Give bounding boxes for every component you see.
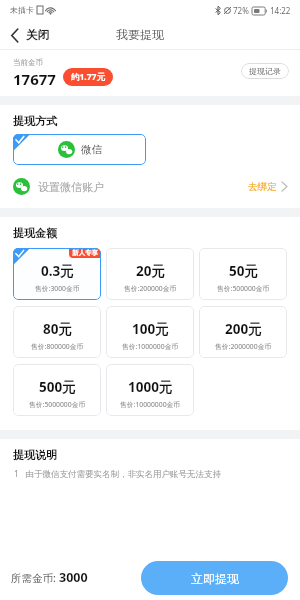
staticText: 提现记录	[249, 66, 281, 76]
staticText: 14:22	[270, 5, 291, 16]
staticText: 我要提现	[116, 27, 164, 42]
staticText: 当前金币	[13, 58, 43, 67]
staticText: 售价:10000000金币	[120, 400, 181, 409]
staticText: 80元	[43, 320, 72, 338]
staticText: 售价:1000000金币	[122, 342, 179, 351]
staticText: 关闭	[26, 28, 49, 42]
staticText: 微信	[81, 143, 102, 156]
staticText: 售价:5000000金币	[29, 400, 86, 409]
button[interactable]: 500元	[13, 364, 101, 416]
button[interactable]: 提现记录	[241, 63, 289, 79]
staticText: 新人专享	[72, 249, 98, 257]
staticText: 提现金额	[13, 226, 57, 240]
staticText: 1 由于微信支付需要实名制，非实名用户账号无法支持	[14, 468, 221, 480]
staticText: 3000	[59, 569, 88, 586]
button[interactable]: 设置微信账户	[0, 175, 300, 198]
staticText: 所需金币:	[11, 571, 59, 585]
staticText: 售价:200000金币	[124, 284, 177, 293]
button[interactable]: 约1.77元	[63, 68, 113, 86]
button[interactable]: 50元	[199, 248, 287, 300]
staticText: 提现说明	[13, 448, 57, 462]
staticText: 约1.77元	[71, 71, 105, 83]
staticText: 售价:800000金币	[31, 342, 84, 351]
staticText: 售价:3000金币	[35, 284, 80, 293]
button[interactable]: 20元	[106, 248, 194, 300]
staticText: 500元	[39, 378, 76, 396]
staticText: 去绑定	[248, 181, 277, 193]
staticText: 1000元	[128, 378, 173, 396]
button[interactable]: 1000元	[106, 364, 194, 416]
button[interactable]: 100元	[106, 306, 194, 358]
staticText: 50元	[229, 262, 258, 280]
staticText: 17677	[13, 69, 56, 89]
staticText: 0.3元	[41, 262, 74, 280]
staticText: 设置微信账户	[38, 180, 104, 194]
button[interactable]: 新人专享	[13, 248, 101, 300]
button[interactable]: 200元	[199, 306, 287, 358]
staticText: 200元	[225, 320, 262, 338]
staticText: 立即提现	[191, 571, 239, 586]
staticText: 100元	[132, 320, 169, 338]
staticText: 20元	[136, 262, 165, 280]
button[interactable]: 80元	[13, 306, 101, 358]
staticText: 未插卡	[10, 5, 34, 15]
button[interactable]: 关闭	[0, 24, 57, 46]
staticText: 提现方式	[13, 114, 57, 128]
button[interactable]: 立即提现	[141, 561, 288, 595]
staticText: 72%	[233, 5, 249, 16]
staticText: 售价:500000金币	[217, 284, 270, 293]
staticText: 售价:2000000金币	[215, 342, 272, 351]
button[interactable]: 微信	[13, 134, 146, 165]
